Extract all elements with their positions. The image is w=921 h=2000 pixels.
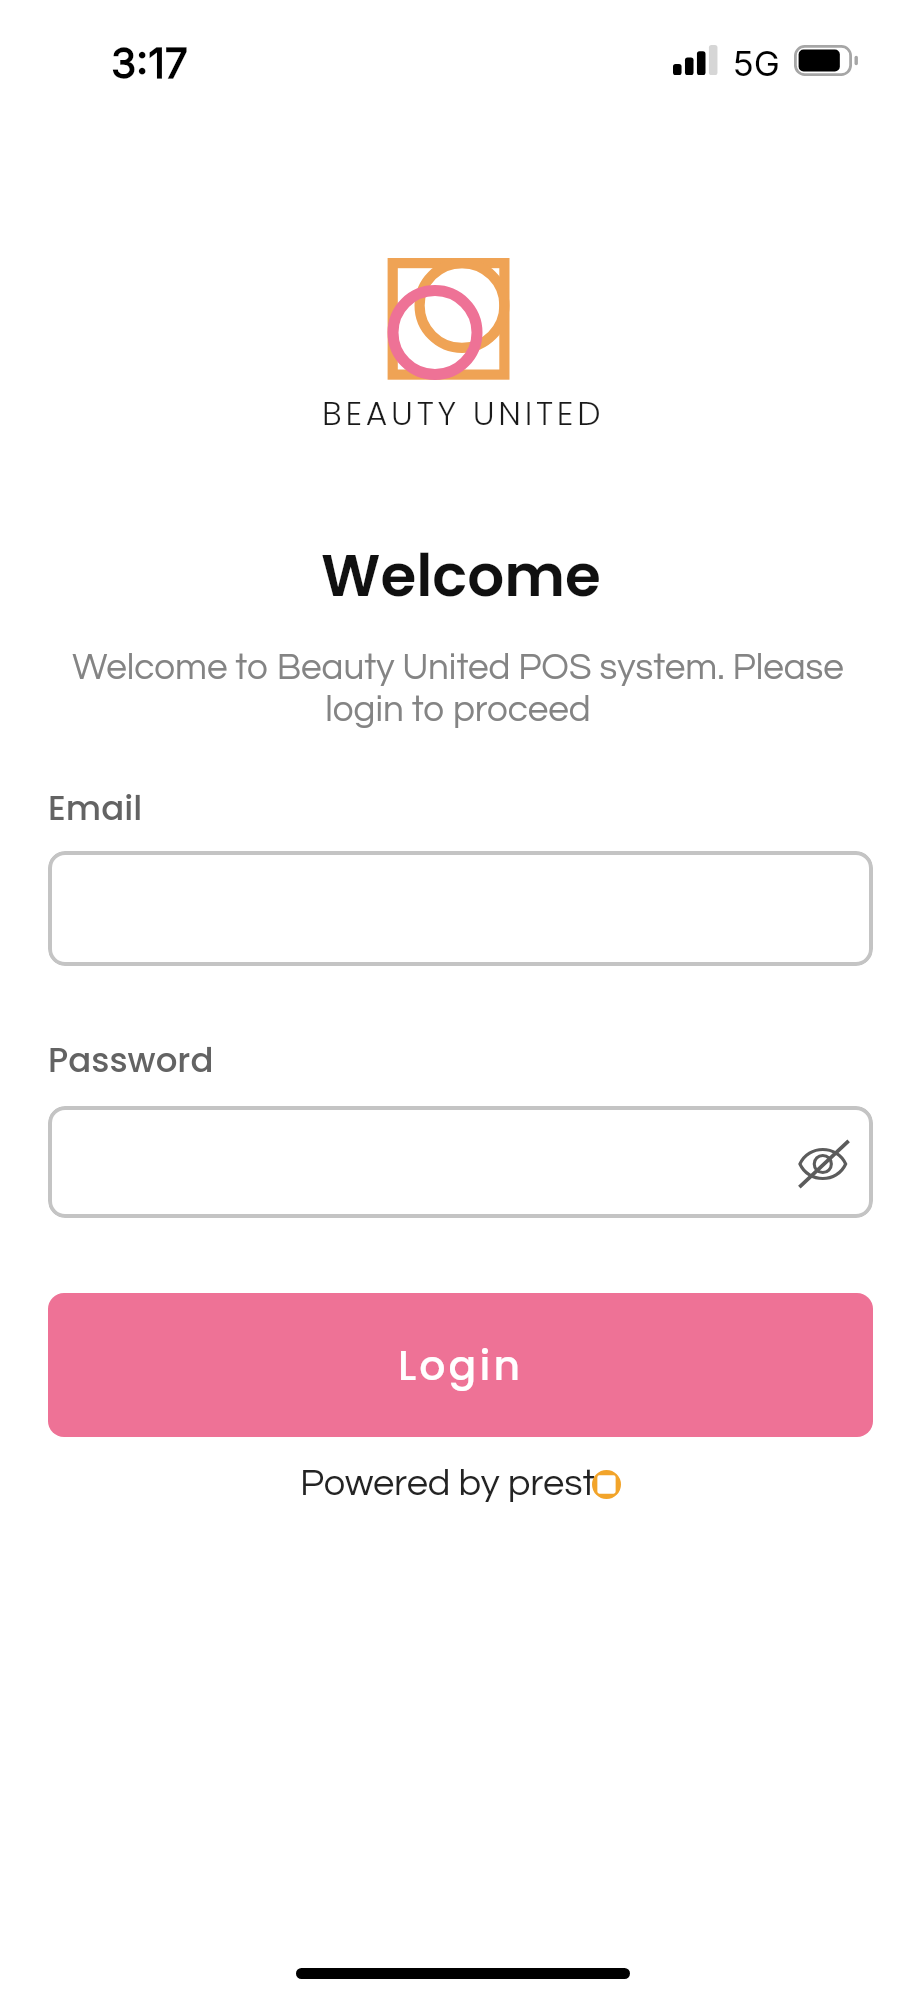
button[interactable]: Login xyxy=(48,1293,873,1437)
staticText: Email xyxy=(48,784,143,832)
staticText: BEAUTY UNITED xyxy=(322,390,605,436)
staticText: 3:17 xyxy=(111,38,189,88)
staticText: 5G xyxy=(733,42,780,84)
staticText: Login xyxy=(398,1337,524,1394)
button[interactable]: Show password xyxy=(48,1106,873,1218)
button[interactable] xyxy=(48,851,873,966)
staticText: Welcome to Beauty United POS system. Ple… xyxy=(72,649,844,729)
staticText: Powered by prest xyxy=(300,1464,595,1503)
staticText: Welcome xyxy=(321,535,601,616)
button[interactable]: Show password xyxy=(784,1124,864,1204)
staticText: Password xyxy=(48,1036,214,1084)
